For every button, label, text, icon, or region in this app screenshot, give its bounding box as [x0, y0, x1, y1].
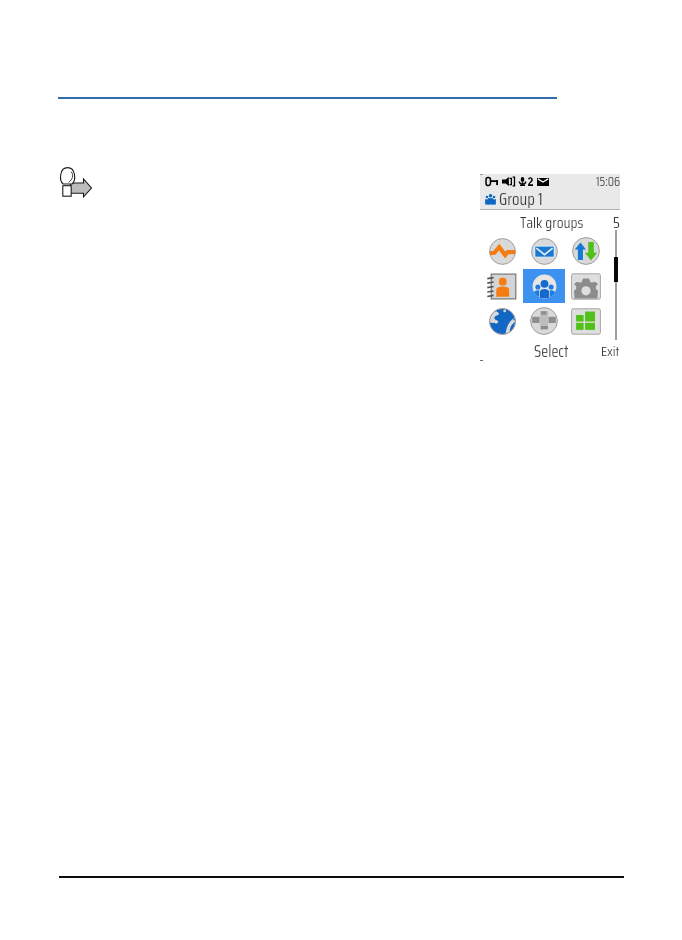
button[interactable]: Contacts [481, 269, 523, 303]
button[interactable]: Talk groups [523, 269, 565, 303]
staticText: Group 1 [499, 186, 543, 213]
staticText: 5 [613, 210, 620, 234]
button[interactable]: Web [481, 304, 523, 338]
button[interactable]: Settings [565, 269, 607, 303]
button[interactable]: Applications [565, 304, 607, 338]
button[interactable]: Messages [523, 234, 565, 268]
button[interactable]: Exit [601, 340, 620, 362]
staticText: Talk groups [520, 210, 584, 234]
button[interactable]: Transfers [565, 234, 607, 268]
button[interactable]: GPS [523, 304, 565, 338]
button[interactable]: Tip [60, 167, 92, 197]
button[interactable]: Network [481, 234, 523, 268]
staticText: 15:06 [596, 171, 621, 191]
button[interactable]: Select [534, 338, 569, 364]
